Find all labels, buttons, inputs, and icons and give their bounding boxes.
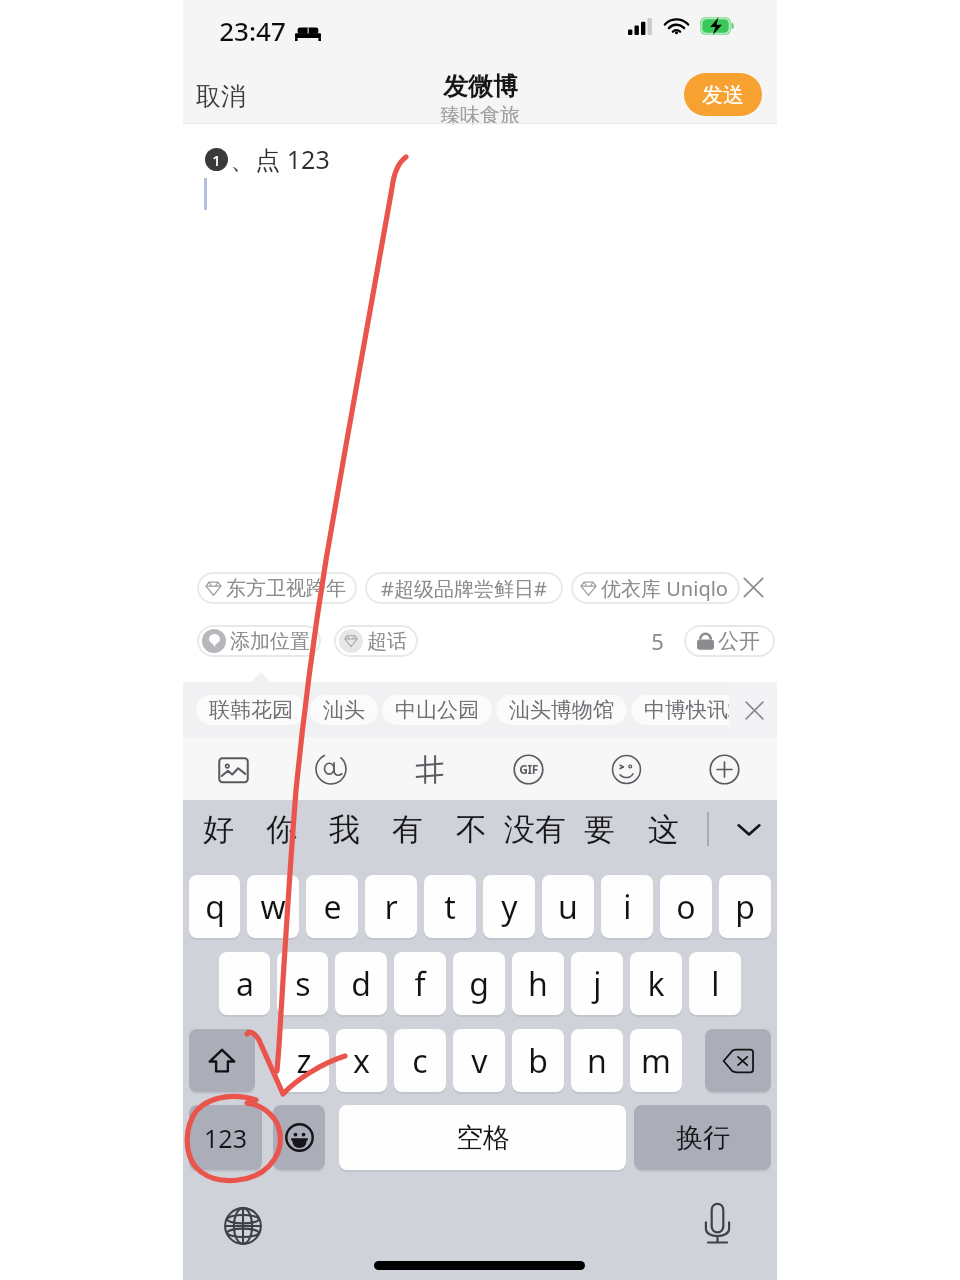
staticText: z [296, 1039, 312, 1083]
button[interactable]: 超话 [334, 625, 418, 657]
button[interactable]: m [630, 1029, 682, 1092]
button[interactable]: q [189, 875, 240, 938]
staticText: 超话 [367, 629, 407, 654]
staticText: 公开 [718, 628, 760, 654]
staticText: x [353, 1039, 370, 1083]
staticText: f [414, 962, 426, 1006]
button[interactable]: v [453, 1029, 505, 1092]
button[interactable]: k [630, 952, 682, 1015]
button[interactable]: h [512, 952, 564, 1015]
button[interactable]: 空格 [339, 1105, 626, 1170]
button[interactable]: Add photo [206, 738, 260, 800]
staticText: 发微博 [443, 71, 518, 102]
staticText: 联韩花园 [209, 697, 293, 723]
staticText: y [501, 885, 518, 929]
button[interactable]: 不 [439, 800, 503, 858]
button[interactable]: 没有 [503, 800, 567, 858]
staticText: 优衣库 Uniqlo [601, 575, 728, 602]
button[interactable]: 这 [631, 800, 695, 858]
button[interactable]: More options [697, 738, 751, 800]
staticText: 5 [651, 626, 664, 656]
button[interactable]: y [483, 875, 535, 938]
button[interactable]: Mention someone [304, 738, 358, 800]
button[interactable]: g [453, 952, 505, 1015]
button[interactable]: 联韩花园 [196, 695, 306, 725]
staticText: t [444, 885, 456, 929]
staticText: 中山公园 [395, 697, 479, 723]
button[interactable]: 中山公园 [382, 695, 492, 725]
staticText: s [295, 962, 311, 1006]
button[interactable]: 好 [187, 800, 250, 858]
button[interactable]: t [424, 875, 476, 938]
staticText: 中博快讯站 [644, 697, 749, 723]
button[interactable]: b [512, 1029, 564, 1092]
button[interactable]: 公开 [684, 625, 775, 657]
staticText: 臻味食旅 [440, 103, 520, 128]
staticText: 汕头 [323, 697, 365, 723]
button[interactable]: n [571, 1029, 623, 1092]
button[interactable]: Hide keyboard [721, 800, 777, 858]
staticText: 发送 [702, 82, 744, 108]
button[interactable]: l [689, 952, 741, 1015]
staticText: 汕头博物馆 [509, 697, 614, 723]
button[interactable]: 换行 [634, 1105, 771, 1170]
staticText: e [323, 885, 342, 929]
staticText: a [236, 962, 254, 1006]
button[interactable]: 汕头 [310, 695, 378, 725]
button[interactable]: x [336, 1029, 387, 1092]
button[interactable]: 优衣库 Uniqlo [571, 572, 740, 604]
button[interactable]: #超级品牌尝鲜日# [365, 572, 563, 604]
button[interactable]: j [571, 952, 623, 1015]
button[interactable]: Backspace [705, 1029, 771, 1092]
button[interactable]: p [719, 875, 771, 938]
button[interactable]: 要 [567, 800, 631, 858]
staticText: c [412, 1039, 428, 1083]
button[interactable]: 有 [376, 800, 439, 858]
button[interactable]: 你 [250, 800, 313, 858]
staticText: l [711, 962, 720, 1006]
staticText: r [384, 885, 398, 929]
staticText: 空格 [456, 1121, 510, 1155]
button[interactable]: Add GIF [501, 738, 555, 800]
button[interactable]: f [394, 952, 446, 1015]
button[interactable]: z [278, 1029, 329, 1092]
staticText: d [351, 962, 371, 1006]
button[interactable]: o [660, 875, 712, 938]
button[interactable]: d [335, 952, 387, 1015]
staticText: 我 [329, 810, 360, 849]
staticText: b [528, 1039, 548, 1083]
button[interactable]: Dictate [693, 1200, 741, 1248]
staticText: 要 [584, 810, 615, 849]
button[interactable]: u [542, 875, 594, 938]
button[interactable]: Emoji [599, 738, 653, 800]
button[interactable]: Add topic [402, 738, 456, 800]
button[interactable]: 123 [189, 1105, 262, 1170]
button[interactable]: e [306, 875, 358, 938]
button[interactable]: i [601, 875, 653, 938]
staticText: 1 [212, 150, 221, 170]
staticText: w [260, 885, 286, 929]
staticText: p [735, 885, 755, 929]
button[interactable]: Change keyboard [219, 1202, 267, 1250]
button[interactable]: Close suggestions [736, 692, 772, 728]
button[interactable]: 汕头博物馆 [496, 695, 627, 725]
button[interactable]: s [277, 952, 328, 1015]
button[interactable]: w [247, 875, 299, 938]
button[interactable]: r [365, 875, 417, 938]
button[interactable]: Emoji keyboard [273, 1105, 325, 1170]
button[interactable]: Shift [189, 1029, 255, 1092]
button[interactable]: 添加位置 [197, 625, 321, 657]
staticText: 、点 123 [230, 142, 330, 176]
button[interactable]: a [219, 952, 270, 1015]
button[interactable]: 发送 [684, 73, 762, 116]
staticText: 东方卫视跨年 [226, 576, 346, 601]
button[interactable]: 中博快讯站 [631, 695, 762, 725]
button[interactable]: Remove topics [734, 568, 772, 606]
button[interactable]: 东方卫视跨年 [197, 572, 357, 604]
staticText: 添加位置 [230, 629, 310, 654]
staticText: m [641, 1039, 671, 1083]
button[interactable]: 取消 [183, 73, 266, 120]
button[interactable]: 我 [313, 800, 376, 858]
button[interactable]: c [394, 1029, 446, 1092]
staticText: 没有 [504, 810, 566, 849]
